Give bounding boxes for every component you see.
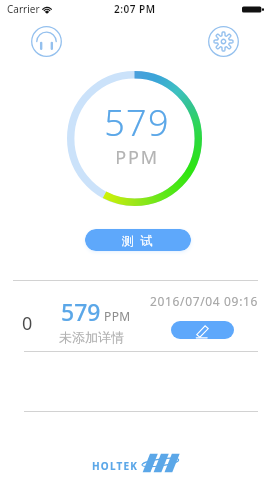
staticText: 579 bbox=[61, 296, 101, 327]
button[interactable]: Headphones bbox=[31, 26, 62, 57]
staticText: 测 试 bbox=[122, 232, 154, 248]
staticText: 2:07 PM bbox=[114, 2, 156, 16]
staticText: 未添加详情 bbox=[59, 329, 124, 345]
button[interactable]: 0 bbox=[0, 281, 270, 351]
staticText: PPM bbox=[2, 145, 270, 170]
button[interactable]: 测 试 bbox=[85, 229, 191, 251]
button[interactable]: Edit bbox=[171, 321, 234, 339]
staticText: PPM bbox=[104, 308, 131, 324]
staticText: HOLTEK bbox=[92, 459, 139, 473]
staticText: 579 bbox=[2, 98, 270, 147]
staticText: 0 bbox=[22, 311, 33, 336]
staticText: 2016/07/04 09:16 bbox=[150, 293, 259, 309]
button[interactable]: Settings bbox=[208, 26, 239, 57]
staticText: Carrier bbox=[7, 2, 40, 16]
